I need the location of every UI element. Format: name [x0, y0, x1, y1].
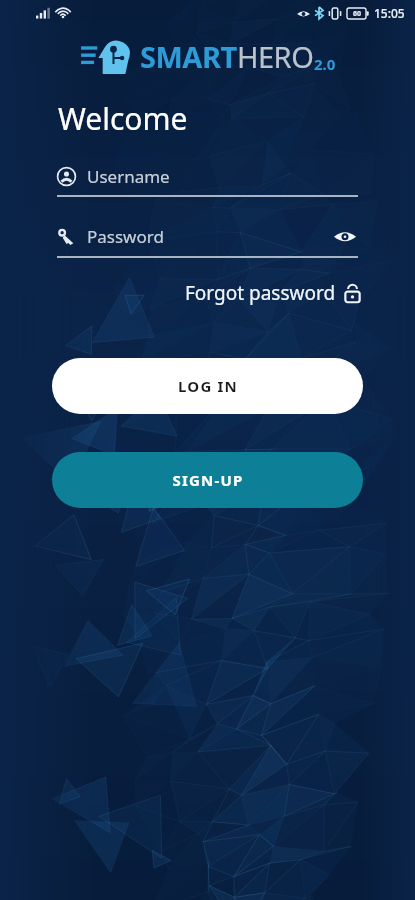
staticText: 60	[353, 9, 362, 19]
staticText: Username	[87, 165, 358, 188]
staticText: SMART	[140, 37, 237, 76]
staticText: 2.0	[314, 54, 336, 74]
button[interactable]: Username	[57, 165, 358, 197]
button[interactable]: LOG IN	[52, 358, 363, 414]
button[interactable]: Forgot password	[181, 276, 365, 310]
staticText: Forgot password	[185, 280, 336, 306]
staticText: Password	[87, 225, 332, 248]
staticText: Welcome	[58, 98, 188, 139]
staticText: SIGN-UP	[172, 470, 244, 490]
button[interactable]: Show password	[332, 223, 358, 249]
button[interactable]: SIGN-UP	[52, 452, 363, 508]
button[interactable]: Password	[57, 223, 358, 258]
staticText: LOG IN	[178, 376, 238, 396]
staticText: HERO	[237, 37, 314, 76]
staticText: 15:05	[374, 5, 405, 21]
